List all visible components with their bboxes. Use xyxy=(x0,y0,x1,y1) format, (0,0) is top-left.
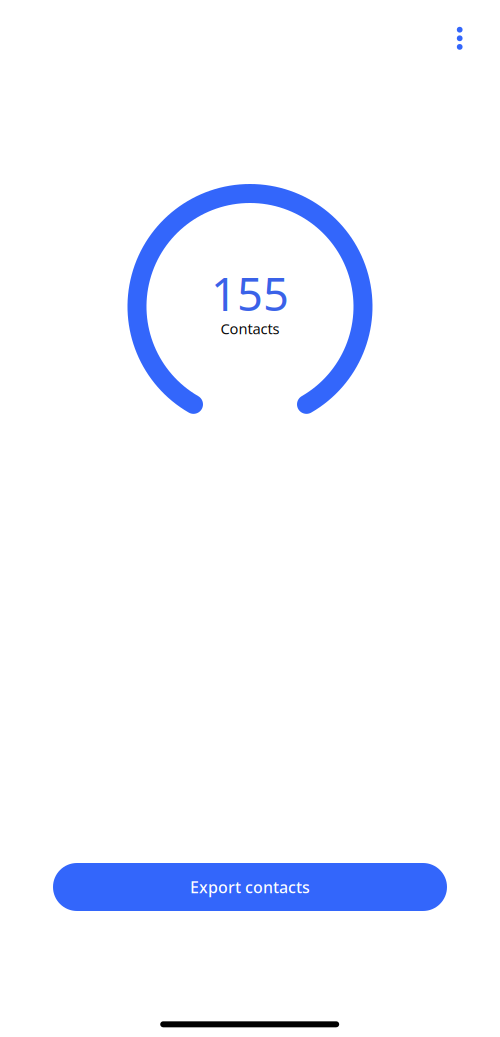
staticText: Export contacts xyxy=(190,876,310,898)
button[interactable]: Export contacts xyxy=(53,863,447,911)
staticText: 155 xyxy=(211,263,289,324)
staticText: Contacts xyxy=(220,319,279,338)
button[interactable]: More options xyxy=(436,14,484,62)
